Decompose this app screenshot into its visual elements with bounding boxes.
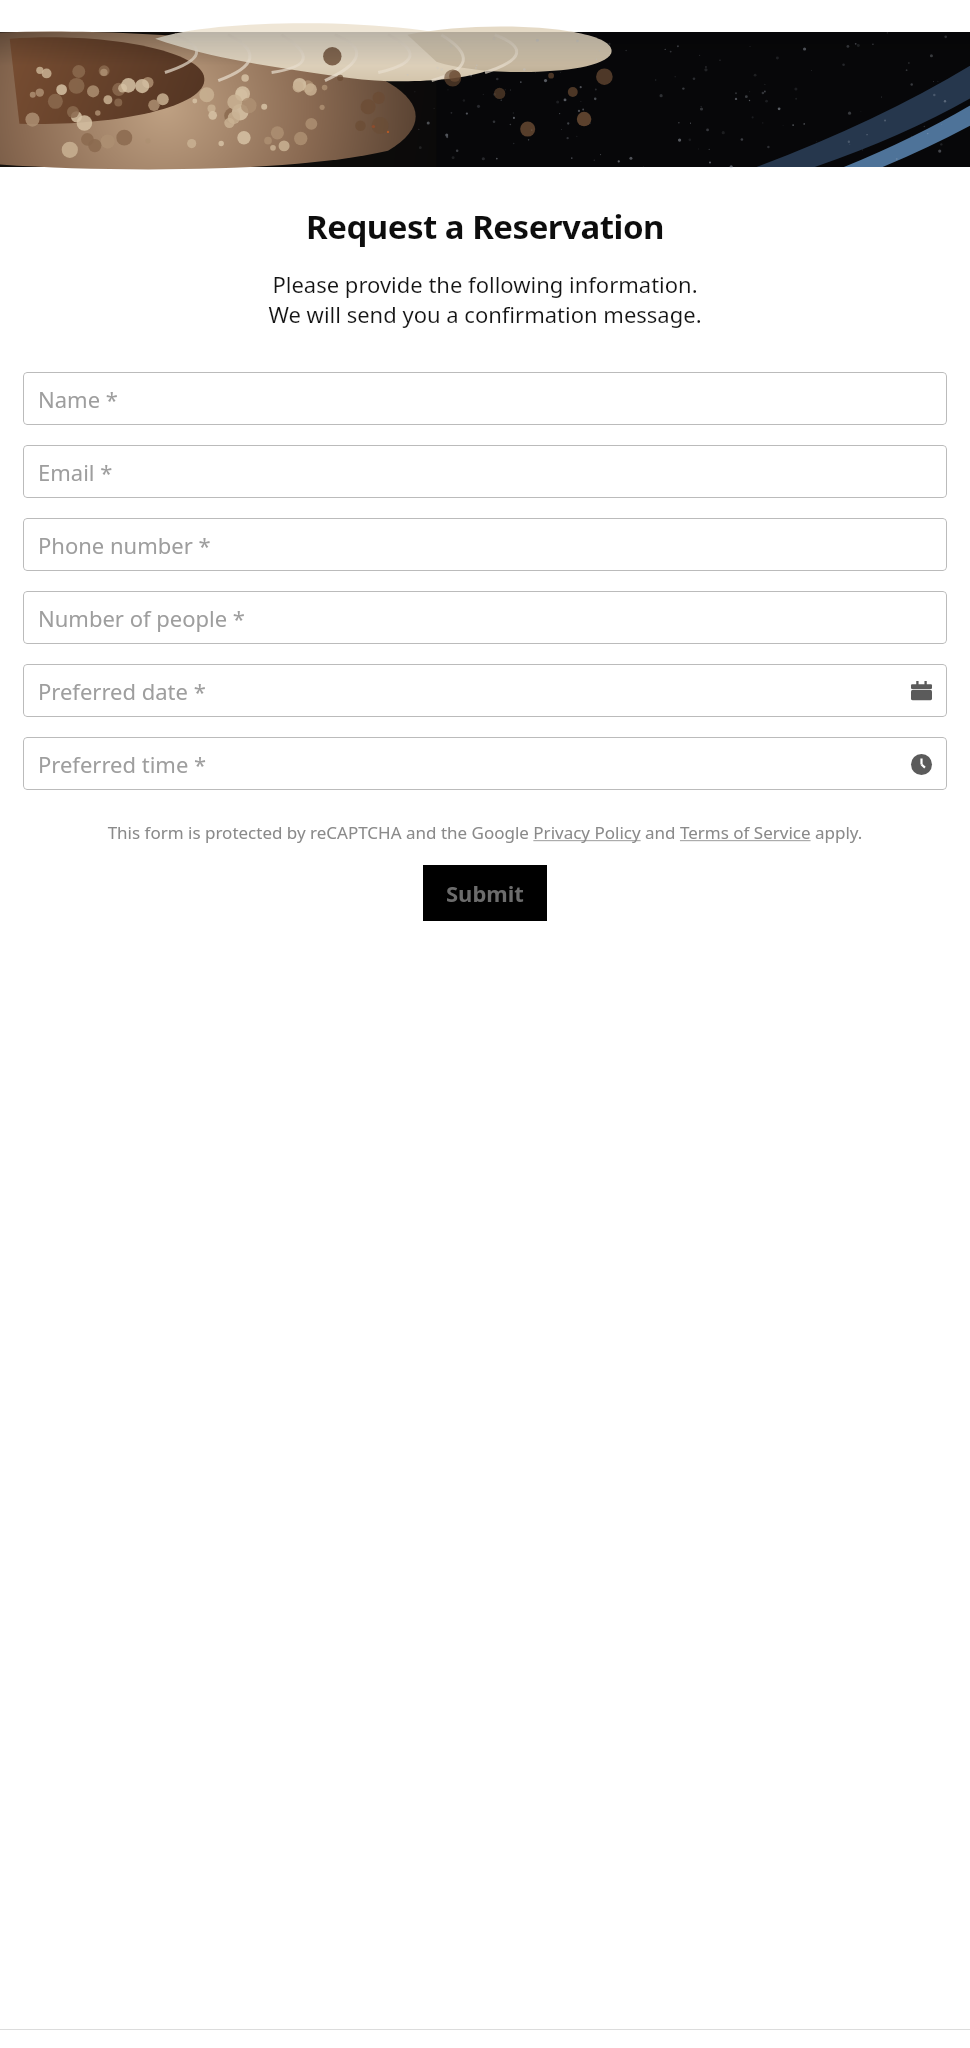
staticText: Please provide the following information…: [0, 269, 970, 329]
button[interactable]: Preferred date *: [23, 664, 947, 717]
button[interactable]: Submit: [423, 865, 547, 921]
staticText: This form is protected by reCAPTCHA and …: [40, 821, 930, 844]
other: Pick time: [908, 751, 934, 777]
button[interactable]: Phone number *: [23, 518, 947, 571]
button[interactable]: Name *: [23, 372, 947, 425]
staticText: Preferred date *: [38, 676, 908, 706]
staticText: Phone number *: [38, 530, 934, 560]
staticText: Preferred time *: [38, 749, 908, 779]
staticText: Number of people *: [38, 603, 934, 633]
staticText: Request a Reservation: [0, 204, 970, 249]
button[interactable]: Preferred time *: [23, 737, 947, 790]
staticText: Name *: [38, 384, 934, 414]
staticText: Email *: [38, 457, 934, 487]
button[interactable]: Email *: [23, 445, 947, 498]
other: Pick date: [908, 678, 934, 704]
button[interactable]: Number of people *: [23, 591, 947, 644]
staticText: Submit: [446, 878, 524, 908]
